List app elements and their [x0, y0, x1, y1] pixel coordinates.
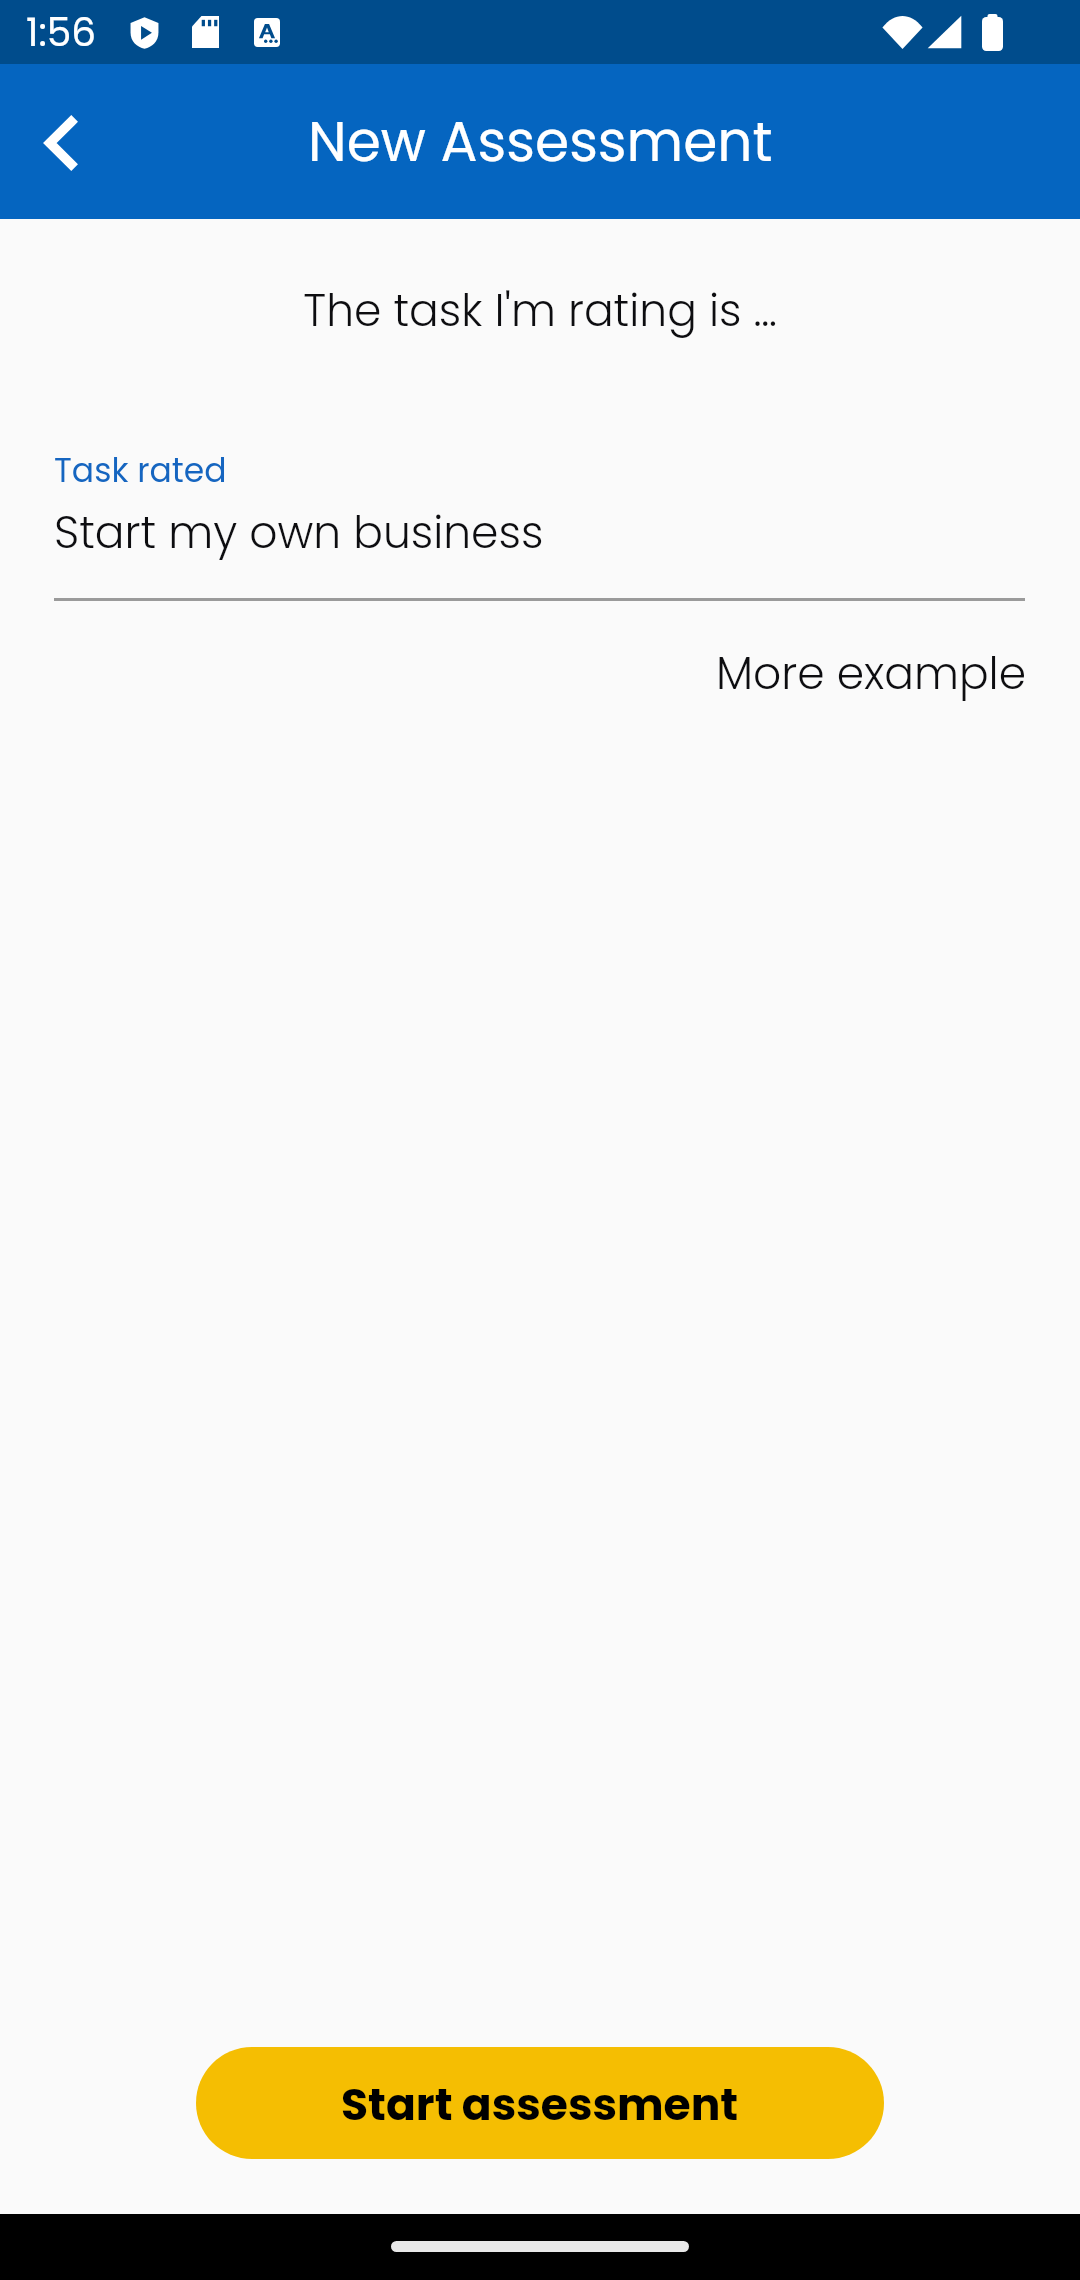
staticText: More example: [716, 643, 1027, 705]
button[interactable]: Start assessment: [196, 2047, 884, 2159]
staticText: 1:56: [26, 5, 97, 60]
staticText: Start assessment: [341, 2074, 739, 2136]
staticText: Start my own business: [54, 502, 544, 564]
staticText: New Assessment: [308, 103, 773, 180]
staticText: Task rated: [54, 447, 227, 493]
button[interactable]: Back: [0, 65, 121, 220]
button[interactable]: More example: [0, 643, 1027, 705]
staticText: The task I'm rating is …: [0, 280, 1080, 342]
